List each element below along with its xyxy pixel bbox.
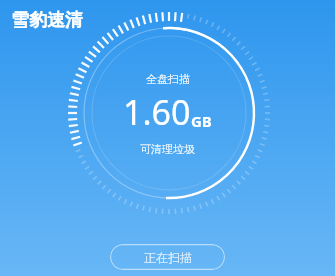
button[interactable]: 正在扫描 xyxy=(110,244,225,270)
staticText: 可清理垃圾 xyxy=(140,142,195,156)
staticText: GB xyxy=(191,111,212,131)
staticText: 正在扫描 xyxy=(144,250,192,265)
staticText: 1.60 xyxy=(123,89,191,135)
staticText: 全盘扫描 xyxy=(146,72,190,86)
button[interactable]: 雪豹速清 xyxy=(10,8,84,33)
staticText: 雪豹速清 xyxy=(11,9,83,32)
